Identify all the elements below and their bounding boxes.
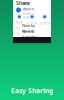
button[interactable]: History <box>38 14 51 24</box>
staticText: Send <box>16 21 23 24</box>
staticText: History <box>40 21 49 24</box>
button[interactable]: Receive <box>26 14 38 24</box>
staticText: Easy Sharing <box>11 86 53 95</box>
staticText: Ready to share <box>23 12 35 19</box>
button[interactable]: Send <box>13 14 26 24</box>
staticText: Nearby devices <box>22 23 35 33</box>
staticText: Recent transfers <box>22 29 38 39</box>
staticText: Receive <box>26 21 37 24</box>
button[interactable]: Recent transfers <box>13 31 51 37</box>
button[interactable]: Nearby devices <box>13 25 51 31</box>
staticText: Share <box>16 0 30 7</box>
staticText: My device <box>23 1 34 11</box>
